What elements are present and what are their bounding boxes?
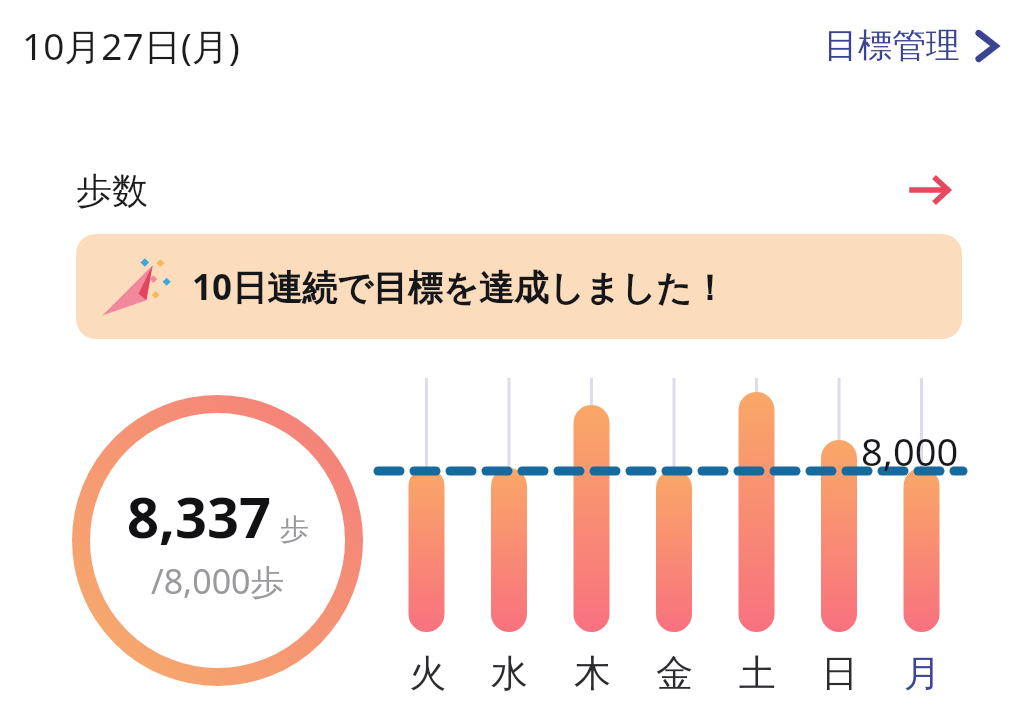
button[interactable]: 10日連続で目標を達成しました！ (76, 234, 962, 339)
button[interactable]: 日 (813, 650, 865, 697)
button[interactable]: 水 (483, 650, 535, 697)
button[interactable]: 火 (401, 650, 453, 697)
button[interactable]: 金 (648, 650, 700, 697)
button[interactable]: 詳細を見る (906, 166, 954, 214)
staticText: 歩数 (76, 168, 148, 213)
button[interactable]: 月 (896, 650, 948, 697)
staticText: 水 (491, 650, 528, 697)
button[interactable]: 土 (731, 650, 783, 697)
staticText: 日 (821, 650, 858, 697)
staticText: 10月27日(月) (22, 20, 240, 71)
staticText: 8,337 (127, 478, 272, 554)
staticText: 目標管理 (824, 24, 960, 67)
button[interactable]: 木 (566, 650, 618, 697)
staticText: 歩 (280, 511, 309, 548)
button[interactable]: 歩数 (30, 122, 994, 716)
staticText: 月 (904, 650, 941, 697)
staticText: 金 (656, 650, 693, 697)
staticText: 10日連続で目標を達成しました！ (192, 263, 727, 311)
staticText: 火 (409, 650, 446, 697)
button[interactable]: 目標管理 (824, 24, 1008, 67)
staticText: /8,000歩 (151, 558, 285, 604)
staticText: 木 (574, 650, 611, 697)
button[interactable]: 10月27日(月) (22, 20, 240, 71)
staticText: 土 (739, 650, 776, 697)
staticText: 8,000 (861, 425, 959, 477)
